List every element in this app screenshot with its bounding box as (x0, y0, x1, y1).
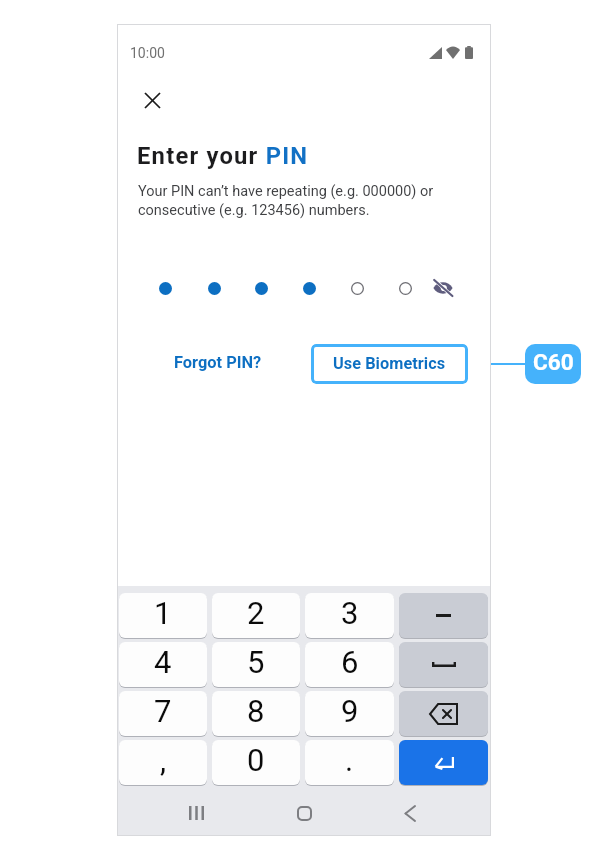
staticText: 9 (341, 693, 359, 729)
button[interactable] (399, 740, 488, 785)
staticText: 10:00 (130, 45, 165, 61)
staticText: Use Biometrics (333, 354, 446, 373)
staticText: 4 (154, 644, 172, 680)
button[interactable]: C60 (525, 344, 581, 384)
button[interactable]: 7 (119, 691, 207, 736)
staticText: Forgot PIN? (174, 353, 262, 372)
staticText: 5 (247, 644, 265, 680)
staticText: 8 (247, 693, 265, 729)
button[interactable]: Close (130, 78, 174, 122)
button[interactable]: Show PIN (429, 274, 457, 302)
button[interactable]: , (119, 740, 207, 785)
staticText: C60 (533, 349, 574, 375)
button[interactable]: Back (388, 791, 432, 835)
staticText: 7 (154, 693, 172, 729)
button[interactable]: 4 (119, 642, 207, 687)
button[interactable]: Forgot PIN? (174, 343, 262, 381)
button[interactable]: Home (282, 791, 326, 835)
button[interactable]: 6 (305, 642, 394, 687)
staticText: . (345, 742, 354, 778)
staticText: 3 (341, 595, 359, 631)
staticText: , (160, 742, 167, 778)
button[interactable]: . (305, 740, 394, 785)
button[interactable]: 2 (212, 593, 300, 638)
button[interactable]: 1 (119, 593, 207, 638)
staticText: Your PIN can’t have repeating (e.g. 0000… (138, 183, 434, 218)
button[interactable] (399, 642, 488, 687)
button[interactable] (399, 691, 488, 736)
button[interactable]: Use Biometrics (311, 344, 468, 384)
button[interactable]: 5 (212, 642, 300, 687)
staticText: 1 (154, 595, 172, 631)
button[interactable]: 9 (305, 691, 394, 736)
staticText: 6 (341, 644, 359, 680)
button[interactable] (399, 593, 488, 638)
staticText: 0 (247, 742, 265, 778)
button[interactable]: Recents (174, 791, 218, 835)
button[interactable]: 3 (305, 593, 394, 638)
button[interactable]: 8 (212, 691, 300, 736)
staticText: Enter your PIN (137, 142, 309, 170)
staticText: 2 (247, 595, 265, 631)
button[interactable]: 0 (212, 740, 300, 785)
